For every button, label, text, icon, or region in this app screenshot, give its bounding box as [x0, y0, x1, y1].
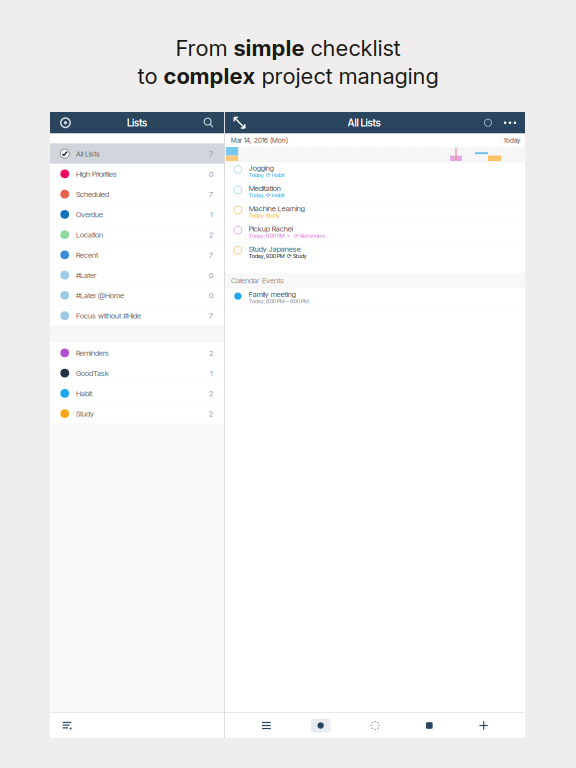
staticText: Mar 14, 2016 (Mon)	[231, 136, 288, 144]
button[interactable]: High Priorities	[50, 164, 224, 184]
staticText: Machine Learning	[249, 204, 305, 213]
button[interactable]: Expand	[225, 112, 250, 133]
button[interactable]: Search	[198, 112, 224, 133]
button[interactable]: Scheduled	[50, 184, 224, 204]
staticText: All Lists	[76, 149, 100, 158]
staticText: Recent	[76, 250, 98, 259]
button[interactable]: Filter	[478, 112, 498, 133]
staticText: Meditation	[249, 184, 281, 193]
staticText: 0	[209, 291, 213, 300]
button[interactable]: Settings	[50, 112, 76, 133]
button[interactable]: Focus view	[362, 713, 388, 738]
staticText: 2	[209, 348, 213, 357]
button[interactable]: Overdue	[50, 204, 224, 224]
staticText: Jogging	[249, 163, 274, 172]
button[interactable]: Today view	[308, 713, 334, 738]
staticText: Focus without #Hide	[76, 311, 141, 320]
button[interactable]: All Lists	[50, 143, 224, 164]
staticText: Habit	[76, 389, 92, 398]
button[interactable]: Study Japanese	[225, 243, 525, 263]
staticText: Today, 6:00 PM ⌖ ⟳ Reminders	[249, 232, 326, 239]
button[interactable]: Habit	[50, 383, 224, 403]
button[interactable]: Location	[50, 224, 224, 245]
staticText: 7	[209, 250, 213, 259]
staticText: Lists	[127, 117, 147, 129]
staticText: Scheduled	[76, 189, 109, 199]
staticText: 7	[209, 189, 213, 199]
staticText: 1	[210, 368, 213, 378]
button[interactable]: Study	[50, 403, 224, 424]
button[interactable]: Reminders	[50, 343, 224, 363]
button[interactable]: List view	[253, 713, 279, 738]
staticText: Today	[503, 136, 520, 144]
button[interactable]: #Later	[50, 265, 224, 285]
staticText: Pickup Rachel	[249, 224, 293, 233]
staticText: 7	[209, 311, 213, 320]
staticText: Study	[76, 409, 94, 418]
staticText: 0	[209, 270, 213, 280]
staticText: Today ⟳ Habit	[249, 192, 285, 198]
staticText: 2	[209, 389, 213, 398]
button[interactable]: Focus without #Hide	[50, 305, 224, 326]
staticText: GoodTask	[76, 368, 109, 378]
button[interactable]: #Later @Home	[50, 285, 224, 305]
staticText: Today, 9:00 PM ⟳ Study	[249, 252, 307, 259]
staticText: High Priorities	[76, 169, 117, 178]
staticText: Location	[76, 230, 103, 239]
staticText: #Later @Home	[76, 291, 124, 300]
staticText: Today ⟳ Habit	[249, 171, 285, 178]
button[interactable]: Pickup Rachel	[225, 222, 525, 243]
staticText: From simple checklist	[175, 35, 400, 61]
staticText: 2	[209, 409, 213, 418]
staticText: to complex project managing	[137, 63, 438, 89]
staticText: 2	[209, 230, 213, 239]
staticText: Overdue	[76, 210, 103, 219]
staticText: Family meeting	[249, 290, 296, 299]
button[interactable]: GoodTask	[50, 363, 224, 383]
button[interactable]: More options	[498, 112, 525, 133]
staticText: 7	[209, 149, 213, 158]
button[interactable]: Machine Learning	[225, 202, 525, 222]
staticText: Study Japanese	[249, 244, 301, 253]
button[interactable]: Calendar view	[416, 713, 442, 738]
button[interactable]: Meditation	[225, 182, 525, 202]
staticText: 0	[209, 169, 213, 178]
staticText: Today Study	[249, 212, 280, 219]
staticText: Calendar Events	[231, 276, 284, 285]
button[interactable]: Family meeting	[225, 288, 525, 308]
button[interactable]: Add task	[471, 713, 497, 738]
staticText: Today, 8:00 PM – 9:00 PM	[249, 298, 309, 304]
staticText: All Lists	[347, 117, 380, 129]
button[interactable]: Recent	[50, 245, 224, 265]
staticText: #Later	[76, 270, 96, 280]
button[interactable]: Sort lists	[50, 713, 77, 738]
staticText: 1	[210, 210, 213, 219]
button[interactable]: Jogging	[225, 162, 525, 182]
staticText: Reminders	[76, 348, 109, 357]
